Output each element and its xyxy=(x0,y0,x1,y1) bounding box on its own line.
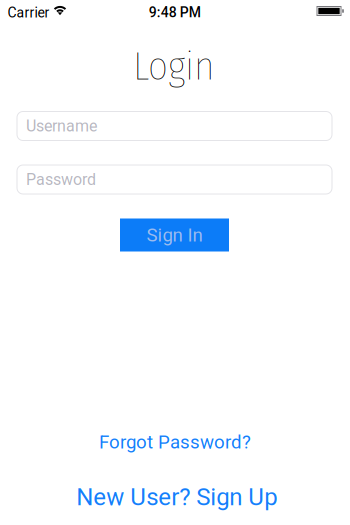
staticText: 9:48 PM xyxy=(149,4,201,21)
staticText: New User? Sign Up xyxy=(76,483,277,511)
staticText: Sign In xyxy=(146,224,202,246)
button[interactable]: Password xyxy=(17,165,332,194)
button[interactable]: New User? Sign Up xyxy=(76,483,277,511)
button[interactable]: Forgot Password? xyxy=(99,431,251,453)
staticText: Login xyxy=(133,43,215,90)
staticText: Username xyxy=(26,117,97,135)
button[interactable]: Username xyxy=(17,111,332,140)
staticText: Password xyxy=(26,170,96,189)
staticText: Forgot Password? xyxy=(99,431,251,453)
staticText: Carrier xyxy=(7,4,49,21)
button[interactable]: Sign In xyxy=(120,218,229,251)
